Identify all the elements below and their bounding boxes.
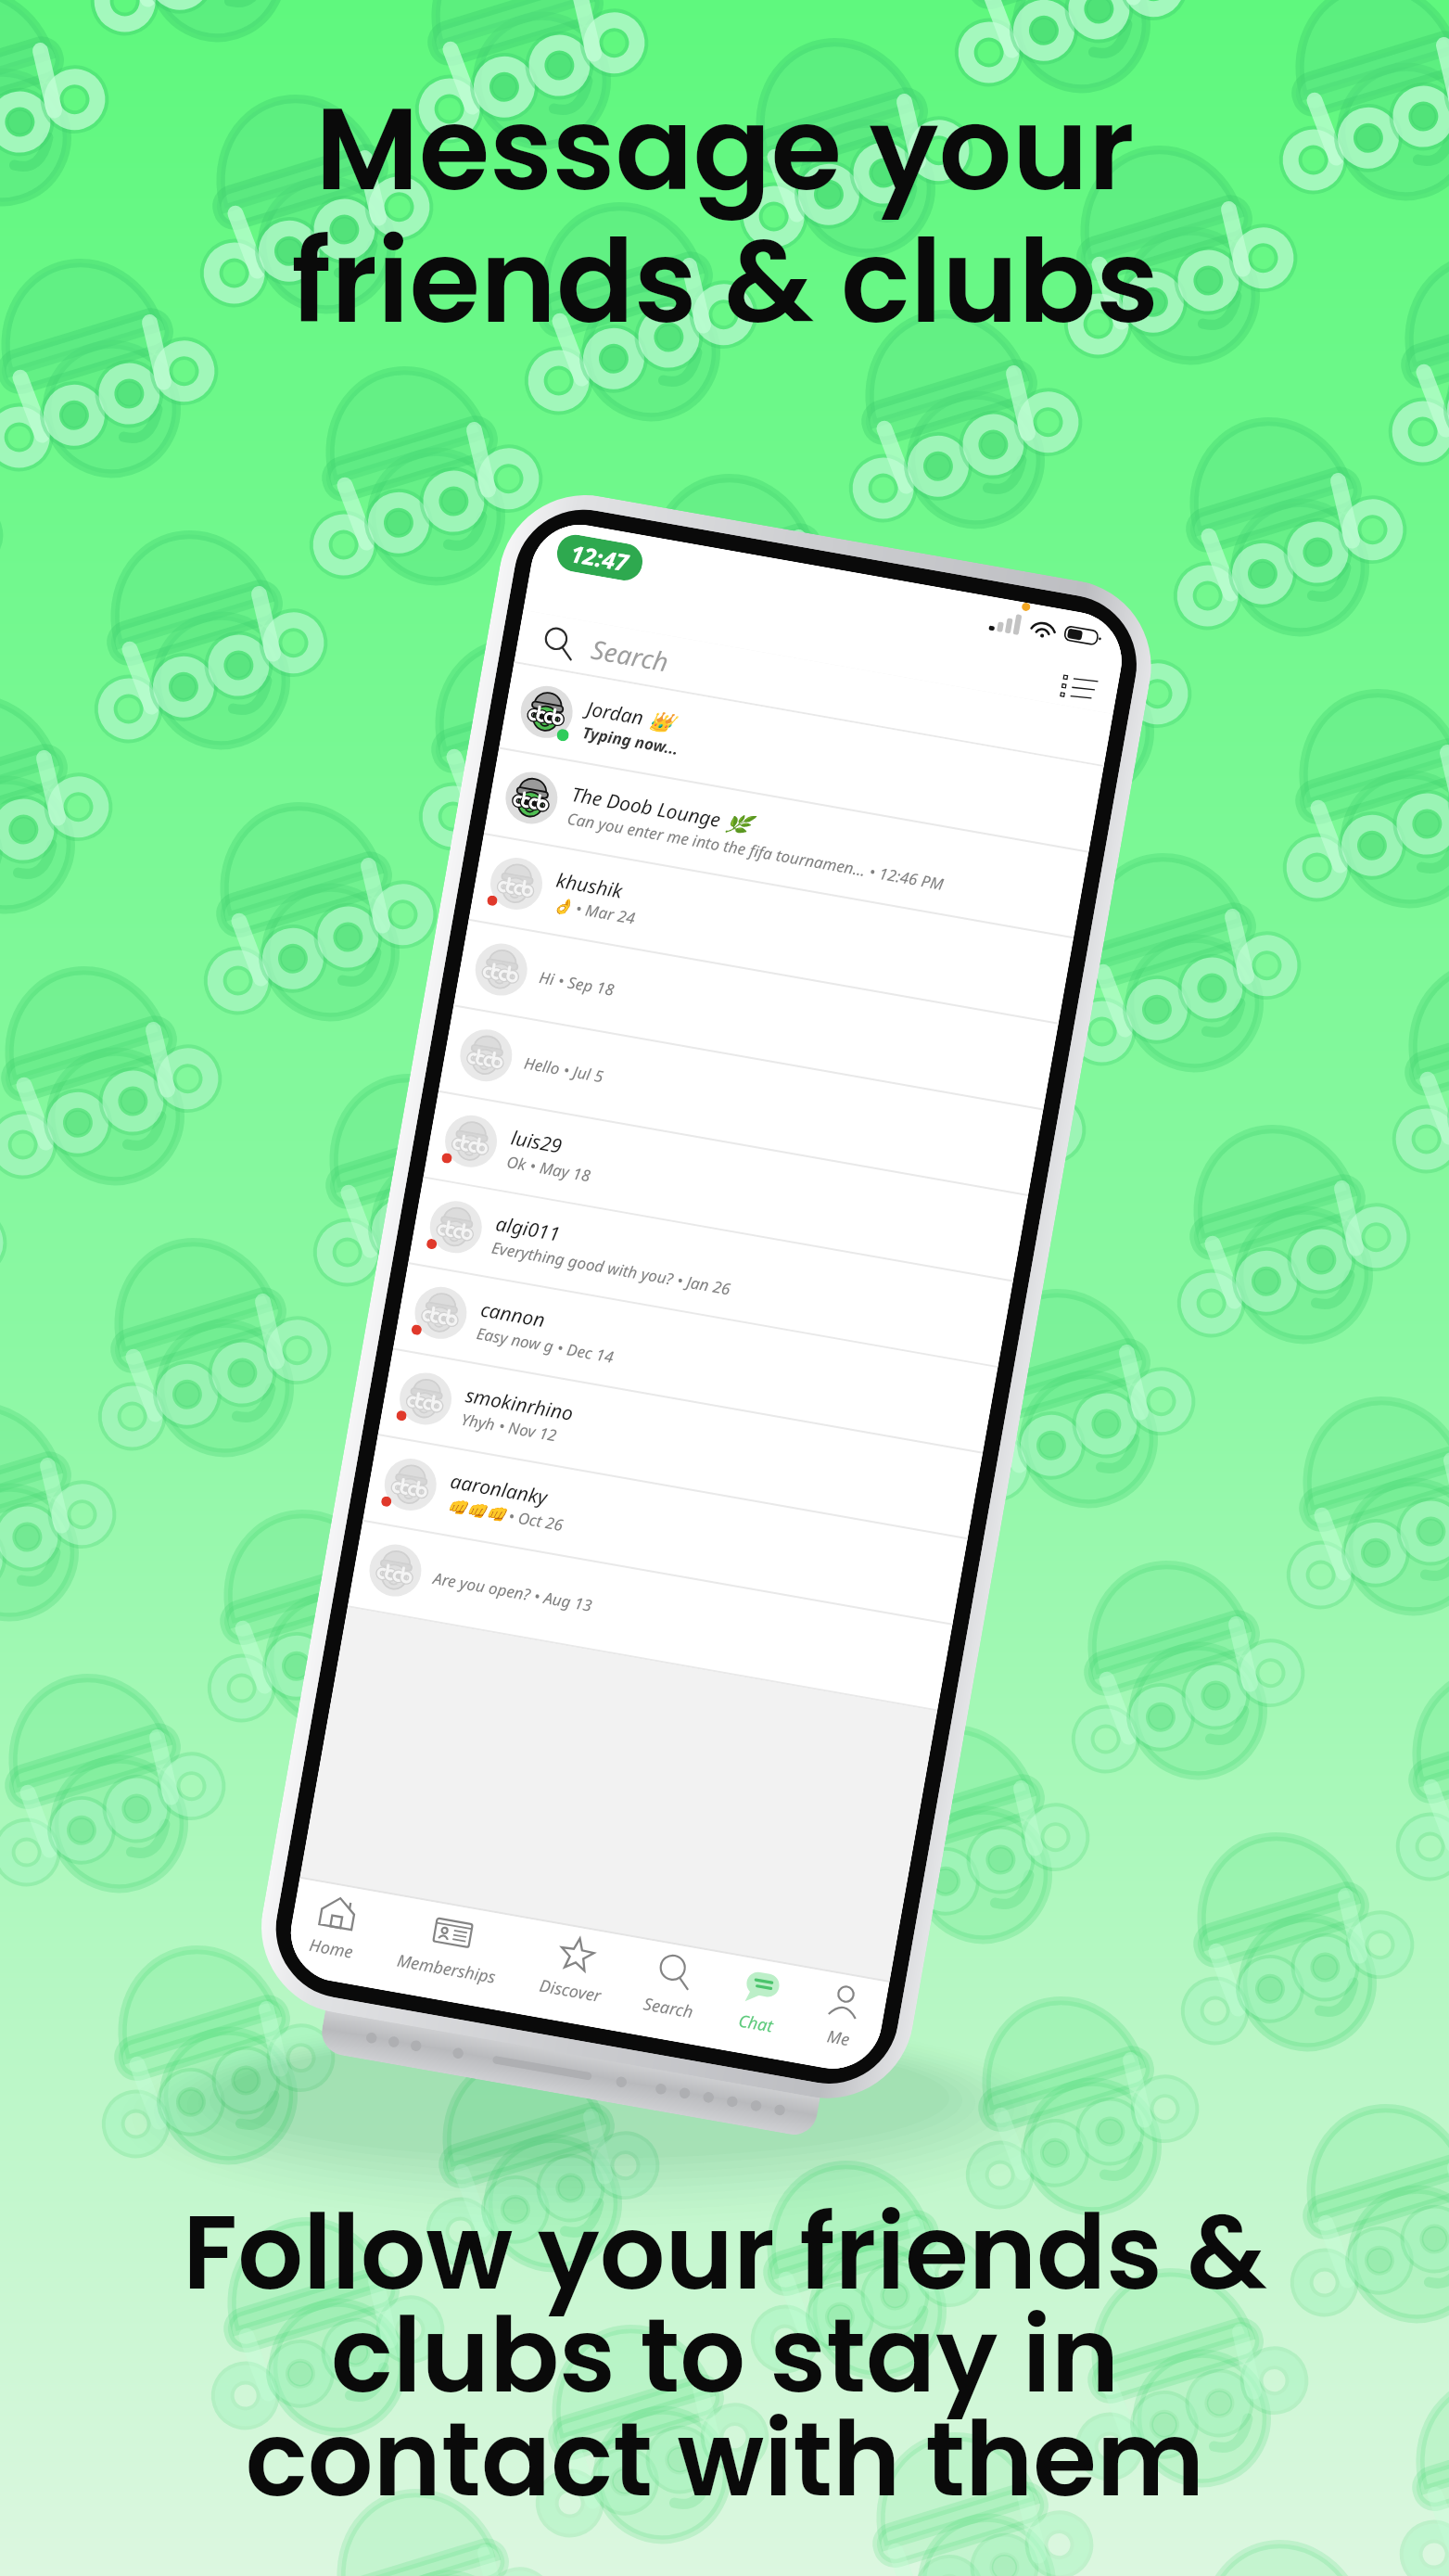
staticText: Search bbox=[642, 1992, 695, 2024]
staticText: Memberships bbox=[395, 1949, 498, 1989]
button[interactable]: Are you open? • Aug 13 bbox=[347, 1521, 952, 1711]
staticText: Discover bbox=[538, 1974, 603, 2007]
staticText: Home bbox=[308, 1933, 355, 1964]
staticText: Yhyh • Nov 12 bbox=[460, 1408, 558, 1446]
staticText: 👌 • Mar 24 bbox=[551, 893, 637, 929]
staticText: Can you enter me into the fifa tournamen… bbox=[566, 807, 946, 895]
staticText: smokinrhino bbox=[463, 1382, 576, 1427]
staticText: Chat bbox=[737, 2009, 775, 2038]
staticText: Me bbox=[825, 2025, 852, 2051]
button[interactable]: Me bbox=[810, 1973, 874, 2059]
staticText: Are you open? • Aug 13 bbox=[432, 1567, 594, 1616]
button[interactable]: The Doob Lounge 🌿 bbox=[484, 749, 1089, 939]
button[interactable]: Jordan 👑 bbox=[499, 663, 1104, 853]
staticText: khushik bbox=[554, 867, 625, 905]
button[interactable]: Hi • Sep 18 bbox=[453, 920, 1058, 1110]
button[interactable]: cannon bbox=[393, 1264, 998, 1454]
staticText: Follow your friends & clubs to stay in c… bbox=[183, 2180, 1267, 2531]
button[interactable]: Search bbox=[634, 1942, 710, 2030]
button[interactable]: Home bbox=[300, 1883, 371, 1970]
staticText: Hi • Sep 18 bbox=[538, 966, 616, 1000]
button[interactable]: luis29 bbox=[423, 1092, 1028, 1282]
staticText: Hello • Jul 5 bbox=[523, 1052, 606, 1087]
staticText: aaronlanky bbox=[448, 1468, 550, 1511]
button[interactable]: Search bbox=[514, 610, 1113, 765]
button[interactable]: algi011 bbox=[408, 1178, 1013, 1368]
button[interactable]: aaronlanky bbox=[363, 1436, 967, 1625]
staticText: Easy now g • Dec 14 bbox=[475, 1322, 616, 1368]
staticText: Search bbox=[589, 631, 671, 679]
button[interactable]: Hello • Jul 5 bbox=[438, 1006, 1043, 1196]
staticText: Typing now... bbox=[581, 722, 680, 759]
staticText: 👊👊👊 • Oct 26 bbox=[445, 1494, 565, 1536]
staticText: 12:47 bbox=[568, 537, 631, 578]
staticText: algi011 bbox=[494, 1210, 562, 1248]
staticText: cannon bbox=[479, 1296, 547, 1334]
button[interactable]: smokinrhino bbox=[378, 1350, 983, 1539]
staticText: Ok • May 18 bbox=[505, 1151, 592, 1186]
button[interactable]: Discover bbox=[530, 1923, 618, 2014]
button[interactable]: Memberships bbox=[388, 1898, 513, 1996]
staticText: luis29 bbox=[509, 1124, 565, 1160]
staticText: Jordan 👑 bbox=[585, 695, 675, 737]
button[interactable]: Chat bbox=[728, 1958, 792, 2045]
staticText: The Doob Lounge 🌿 bbox=[569, 781, 752, 839]
staticText: Everything good with you? • Jan 26 bbox=[490, 1237, 732, 1300]
button[interactable]: Sort and filter bbox=[1059, 668, 1099, 709]
button[interactable]: khushik bbox=[469, 835, 1073, 1024]
staticText: Message your friends & clubs bbox=[291, 69, 1159, 362]
